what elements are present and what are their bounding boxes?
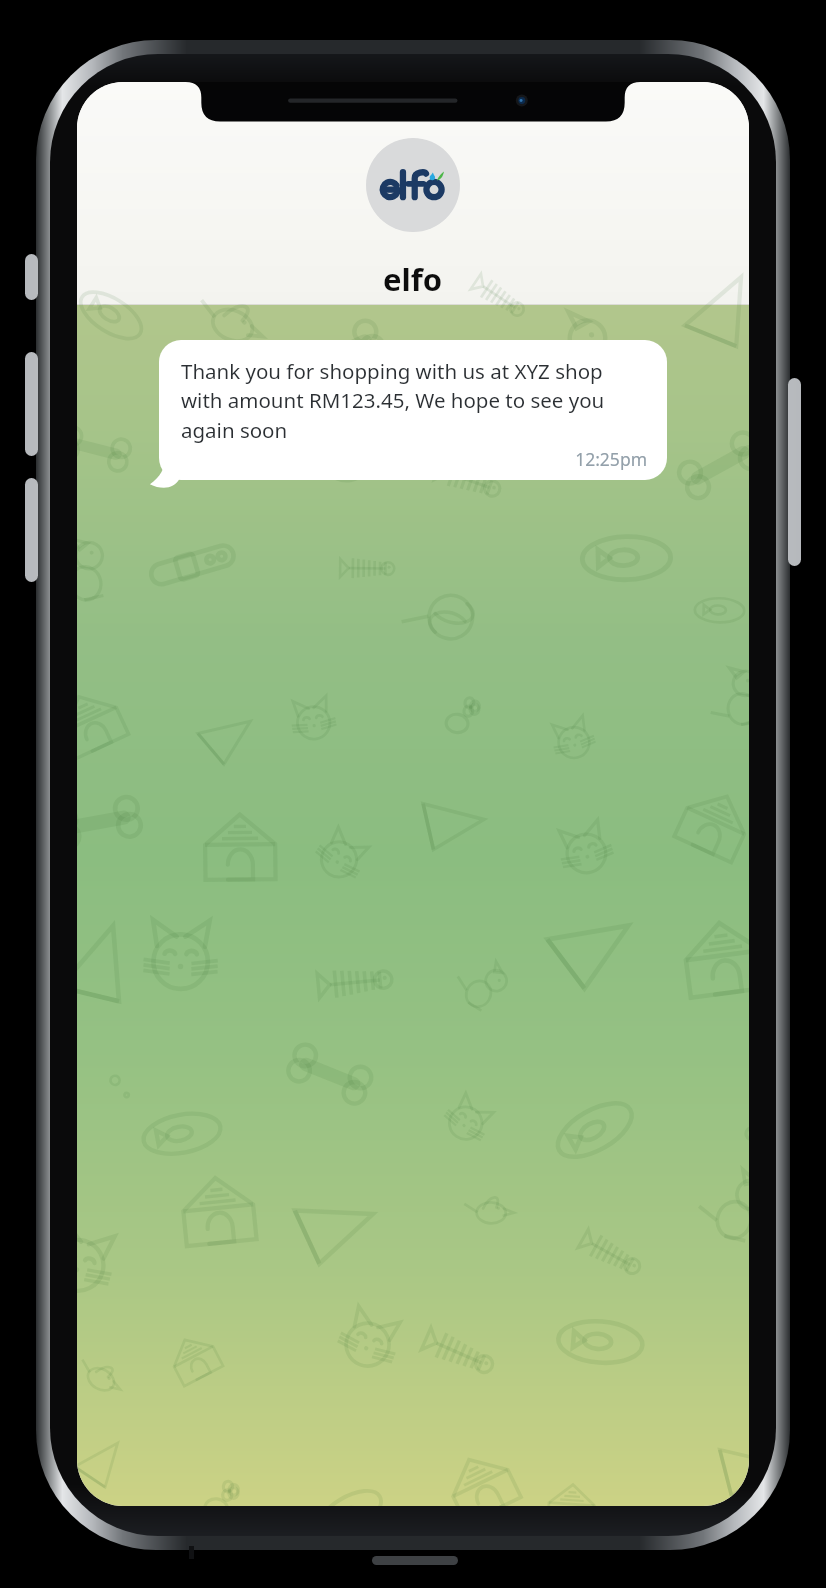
button[interactable]: elfo (371, 256, 455, 302)
button[interactable]: elfo brand logo (366, 138, 460, 232)
staticText: 12:25pm (181, 447, 647, 471)
staticText: elfo (383, 258, 443, 300)
staticText: Thank you for shopping with us at XYZ sh… (181, 357, 647, 444)
button[interactable]: Thank you for shopping with us at XYZ sh… (159, 340, 667, 480)
